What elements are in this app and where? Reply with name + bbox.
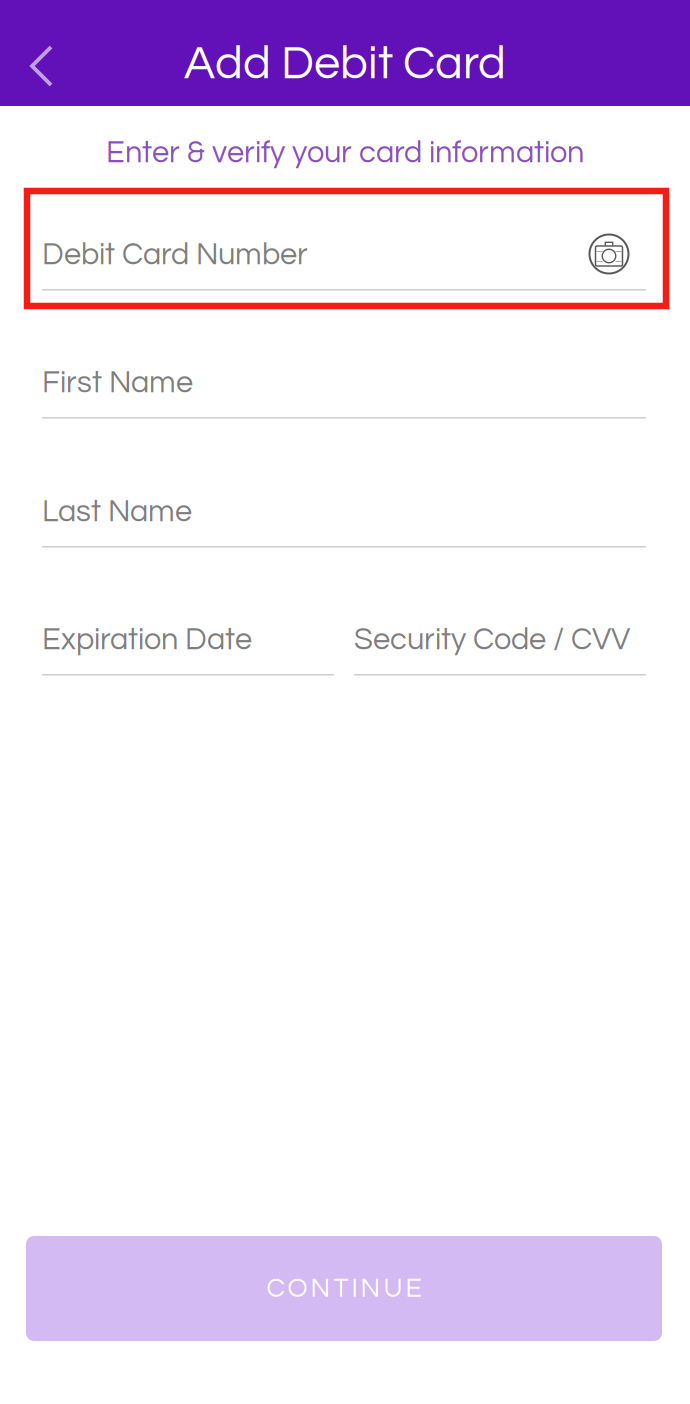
button[interactable]: Last Name	[42, 504, 646, 548]
button[interactable]: Security Code / CVV	[354, 632, 646, 676]
staticText: Expiration Date	[42, 624, 252, 656]
button[interactable]: CONTINUE	[26, 1236, 662, 1341]
button[interactable]: Back	[0, 0, 90, 106]
staticText: CONTINUE	[266, 1275, 421, 1302]
staticText: Enter & verify your card information	[106, 137, 584, 169]
button[interactable]: Expiration Date	[42, 632, 334, 676]
staticText: Last Name	[42, 496, 192, 528]
button[interactable]: First Name	[42, 375, 646, 419]
button[interactable]: Scan card with camera	[42, 247, 94, 299]
staticText: Security Code / CVV	[354, 624, 630, 656]
button[interactable]: Debit Card Number	[42, 247, 646, 291]
staticText: Add Debit Card	[184, 40, 506, 88]
staticText: Debit Card Number	[42, 239, 308, 271]
staticText: First Name	[42, 367, 193, 399]
